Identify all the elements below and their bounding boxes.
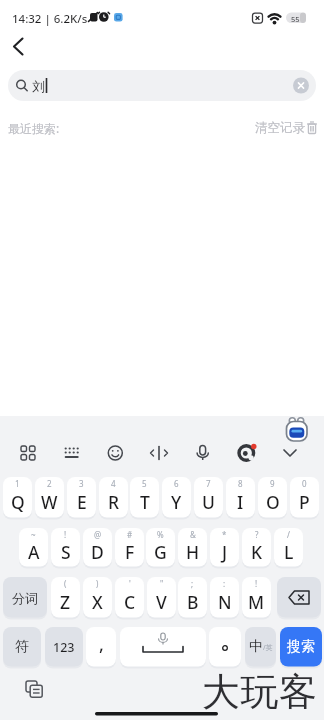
button[interactable]: # (115, 528, 144, 567)
button[interactable]: 123 (45, 627, 83, 667)
button[interactable]: " (147, 577, 176, 618)
button[interactable]: 3 (67, 477, 96, 518)
staticText: O (266, 490, 280, 514)
staticText: 4 (111, 478, 116, 489)
staticText: U (202, 490, 215, 514)
button[interactable]: / (274, 528, 303, 567)
staticText: " (160, 578, 164, 589)
button[interactable]: , (86, 627, 116, 667)
staticText: ' (129, 578, 131, 589)
button[interactable]: 0 (290, 477, 319, 518)
staticText: 7 (206, 478, 211, 489)
staticText: 5 (142, 478, 147, 489)
staticText: ) (96, 578, 99, 589)
staticText: ~ (31, 529, 36, 540)
staticText: P (299, 490, 310, 514)
button[interactable]: % (146, 528, 175, 567)
staticText: 55 (291, 14, 300, 24)
button[interactable] (6, 440, 49, 466)
staticText: 符 (15, 638, 29, 656)
button[interactable] (209, 627, 241, 667)
staticText: E (77, 490, 87, 514)
staticText: 1 (15, 478, 20, 489)
button[interactable] (254, 116, 320, 136)
staticText: S (61, 540, 71, 564)
staticText: 2 (47, 478, 52, 489)
button[interactable]: 7 (194, 477, 223, 518)
staticText: ( (64, 578, 67, 589)
staticText: 3 (79, 478, 84, 489)
staticText: R (108, 490, 120, 514)
button[interactable]: 5 (130, 477, 159, 518)
button[interactable]: 8 (226, 477, 255, 518)
staticText: F (125, 540, 135, 564)
button[interactable] (8, 70, 316, 101)
staticText: * (222, 529, 227, 540)
staticText: X (92, 590, 103, 614)
button[interactable]: ( (51, 577, 80, 618)
staticText: T (140, 490, 150, 514)
staticText: 中 (249, 638, 263, 656)
staticText: L (284, 540, 294, 564)
button[interactable]: ) (83, 577, 112, 618)
staticText: 123 (53, 639, 75, 656)
staticText: B (187, 590, 199, 614)
button[interactable] (181, 440, 224, 466)
staticText: H (186, 540, 200, 564)
staticText: & (190, 529, 196, 540)
staticText: ; (191, 578, 194, 589)
button[interactable]: 搜索 (280, 627, 322, 667)
button[interactable]: 符 (3, 627, 41, 667)
staticText: , (99, 632, 104, 657)
staticText: V (156, 590, 167, 614)
button[interactable]: 9 (258, 477, 287, 518)
button[interactable] (225, 440, 268, 466)
button[interactable]: ! (242, 577, 271, 618)
staticText: # (127, 529, 133, 540)
button[interactable]: ' (115, 577, 144, 618)
button[interactable]: ? (242, 528, 271, 567)
staticText: 6 (174, 478, 179, 489)
staticText: G (154, 540, 167, 564)
staticText: 搜索 (287, 638, 315, 656)
staticText: 8 (238, 478, 243, 489)
staticText: 0 (302, 478, 307, 489)
staticText: 分词 (12, 590, 38, 606)
staticText: ? (255, 529, 259, 540)
staticText: W (41, 490, 58, 514)
staticText: : (223, 578, 226, 589)
staticText: C (124, 590, 136, 614)
button[interactable]: 中 (245, 627, 276, 667)
button[interactable]: : (210, 577, 239, 618)
staticText: Z (60, 590, 71, 614)
button[interactable] (277, 577, 321, 618)
staticText: ! (255, 578, 258, 589)
button[interactable] (268, 440, 311, 466)
staticText: J (222, 540, 228, 564)
button[interactable] (4, 32, 40, 60)
button[interactable]: 6 (162, 477, 191, 518)
button[interactable]: 1 (3, 477, 32, 518)
button[interactable]: 分词 (3, 577, 47, 618)
button[interactable]: ~ (19, 528, 48, 567)
staticText: A (28, 540, 40, 564)
staticText: 刘 (32, 78, 45, 94)
button[interactable] (20, 676, 50, 704)
button[interactable]: 4 (99, 477, 128, 518)
button[interactable]: & (178, 528, 207, 567)
button[interactable]: ! (51, 528, 80, 567)
staticText: 清空记录 (255, 120, 305, 136)
button[interactable]: * (210, 528, 239, 567)
button[interactable]: 2 (35, 477, 64, 518)
button[interactable] (137, 440, 180, 466)
button[interactable] (120, 627, 206, 667)
staticText: 14:32 | 6.2K/s (12, 11, 88, 27)
button[interactable] (93, 440, 136, 466)
staticText: ! (64, 529, 67, 540)
button[interactable]: @ (83, 528, 112, 567)
staticText: / (287, 529, 290, 540)
button[interactable] (50, 440, 93, 466)
staticText: 大玩客 (202, 668, 318, 716)
button[interactable]: ; (178, 577, 207, 618)
staticText: I (237, 490, 244, 514)
